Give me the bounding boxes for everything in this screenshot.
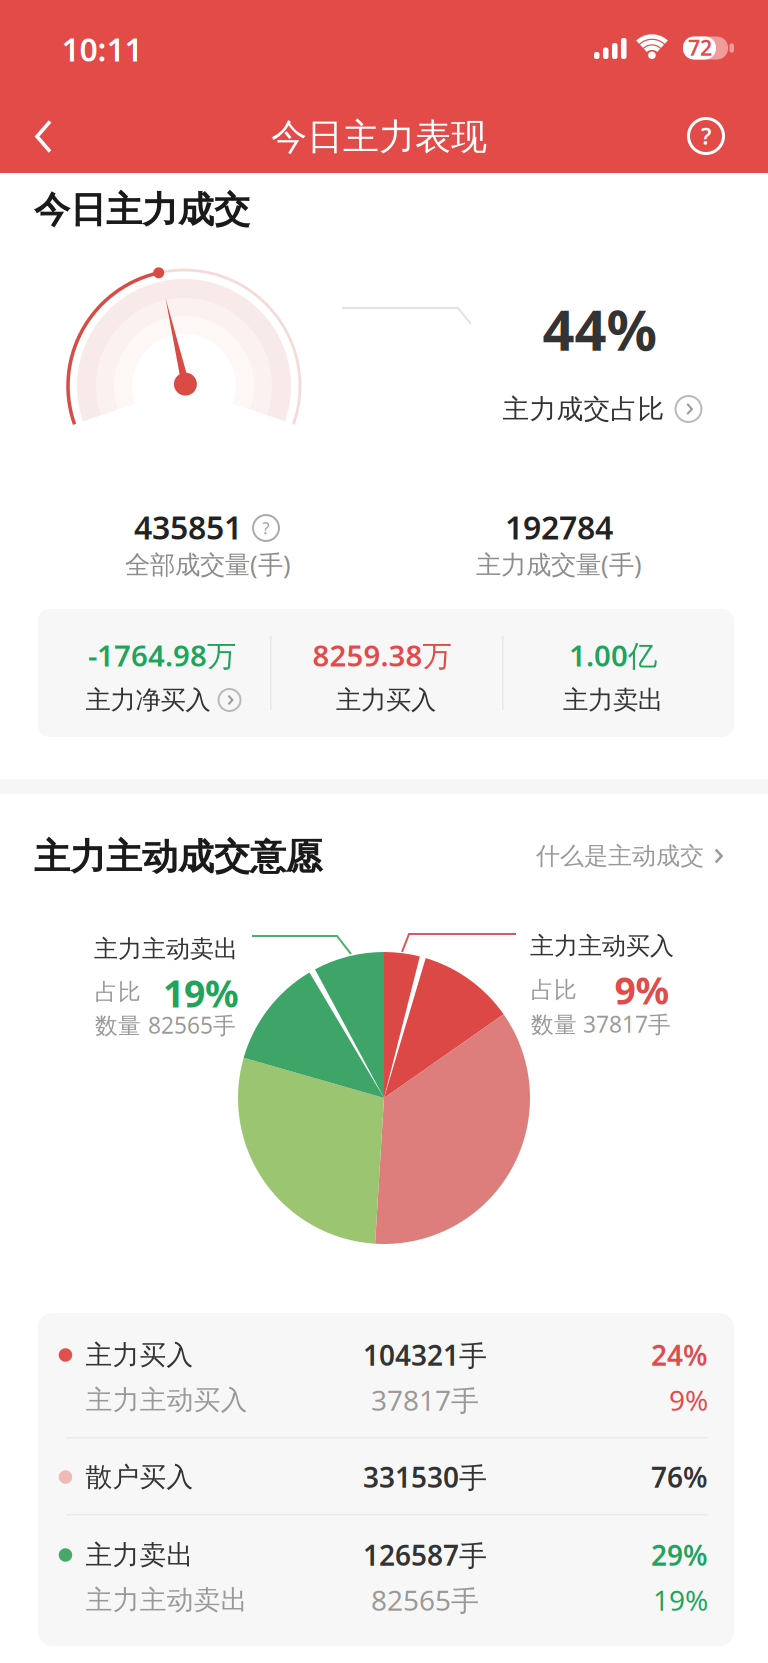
button[interactable]: 主力净买入	[85, 684, 240, 715]
staticText: 76%	[651, 1458, 708, 1496]
staticText: 主力主动买入	[86, 1384, 248, 1416]
staticText: 主力主动卖出	[86, 1584, 248, 1616]
button[interactable]: 什么是主动成交	[536, 841, 724, 871]
button[interactable]: 说明	[253, 515, 279, 541]
staticText: 19%	[163, 968, 239, 1018]
staticText: 散户买入	[85, 1461, 193, 1493]
staticText: 数量	[531, 1011, 577, 1039]
staticText: ?	[262, 517, 269, 539]
staticText: ?	[701, 121, 711, 151]
staticText: 主力主动买入	[530, 931, 674, 961]
staticText: 37817手	[371, 1381, 479, 1419]
staticText: 82565手	[148, 1010, 236, 1040]
staticText: 主力净买入	[85, 684, 210, 715]
staticText: 主力主动卖出	[94, 934, 238, 964]
staticText: 29%	[651, 1536, 708, 1574]
staticText: 10:11	[61, 28, 142, 70]
staticText: 主力成交占比	[502, 393, 664, 425]
staticText: 19%	[653, 1581, 708, 1619]
staticText: 192784	[505, 506, 613, 548]
staticText: 占比	[531, 976, 577, 1004]
staticText: 37817手	[583, 1009, 671, 1039]
button[interactable]: Back	[30, 118, 74, 154]
staticText: 8259.38万	[312, 635, 451, 674]
staticText: 331530手	[363, 1458, 487, 1496]
staticText: 今日主力成交	[34, 188, 250, 232]
staticText: -1764.98万	[88, 635, 236, 674]
staticText: 主力卖出	[563, 684, 663, 715]
staticText: 主力成交量(手)	[476, 547, 642, 581]
staticText: 72	[688, 33, 712, 62]
staticText: 主力买入	[85, 1339, 193, 1371]
staticText: 1.00亿	[569, 635, 657, 674]
button[interactable]: 主力成交占比	[502, 393, 701, 425]
staticText: 104321手	[363, 1336, 487, 1374]
staticText: 9%	[614, 965, 669, 1015]
staticText: 82565手	[371, 1581, 479, 1619]
staticText: 占比	[95, 978, 141, 1006]
staticText: 9%	[669, 1381, 708, 1419]
staticText: 主力主动成交意愿	[34, 835, 322, 879]
staticText: 435851	[134, 506, 242, 548]
button[interactable]: 帮助	[684, 114, 728, 158]
staticText: 主力买入	[336, 684, 436, 715]
staticText: 主力卖出	[85, 1539, 193, 1571]
staticText: 数量	[95, 1012, 141, 1040]
staticText: 44%	[542, 292, 657, 366]
staticText: 126587手	[363, 1536, 487, 1574]
staticText: 今日主力表现	[271, 115, 487, 159]
staticText: 24%	[651, 1336, 708, 1374]
staticText: 什么是主动成交	[536, 841, 704, 871]
staticText: 全部成交量(手)	[125, 547, 291, 581]
